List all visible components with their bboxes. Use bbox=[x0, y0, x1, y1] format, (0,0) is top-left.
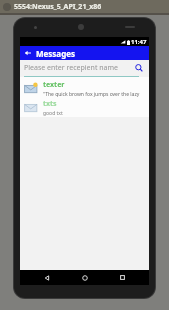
staticText: "The quick brown fox jumps over the lazy… bbox=[43, 91, 146, 98]
staticText: 11:47 bbox=[131, 38, 147, 46]
button[interactable]: Home bbox=[75, 270, 95, 285]
button[interactable]: Search bbox=[133, 62, 145, 74]
staticText: texter bbox=[43, 80, 65, 90]
staticText: 5554:Nexus_5_API_21_x86 bbox=[14, 2, 102, 12]
button[interactable]: Recent apps bbox=[112, 270, 132, 285]
button[interactable]: texter bbox=[20, 79, 149, 98]
staticText: good txt bbox=[43, 110, 63, 117]
staticText: txts bbox=[43, 99, 57, 109]
staticText: Messages bbox=[36, 48, 75, 59]
button[interactable]: Back bbox=[20, 46, 36, 60]
button[interactable]: Back bbox=[37, 270, 57, 285]
button[interactable]: Window menu bbox=[3, 3, 11, 11]
button[interactable]: Please enter recepient name bbox=[20, 60, 149, 76]
staticText: Please enter recepient name bbox=[24, 63, 133, 73]
button[interactable]: txts bbox=[20, 98, 149, 117]
